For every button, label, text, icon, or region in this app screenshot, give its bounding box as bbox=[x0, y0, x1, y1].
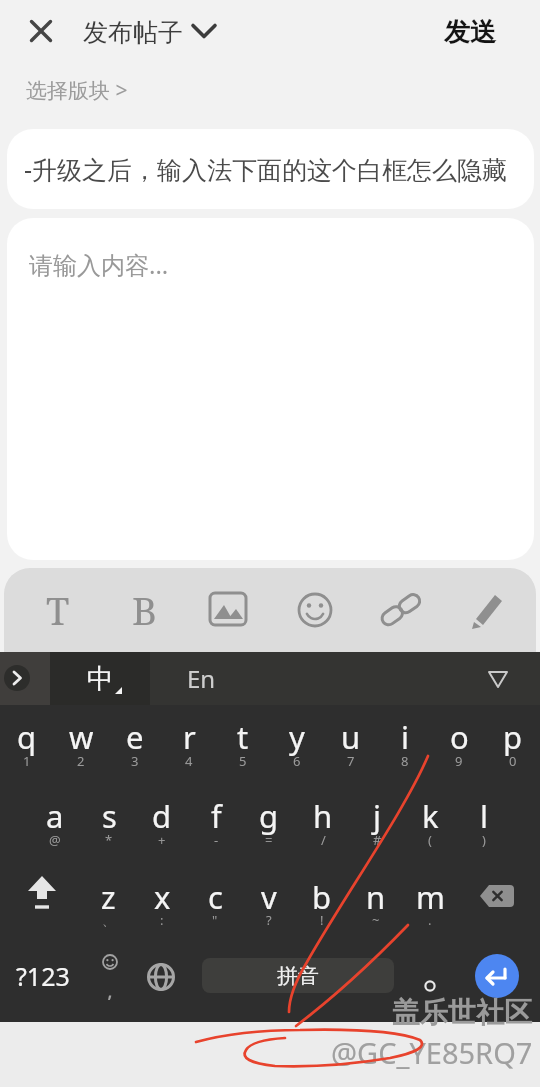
button[interactable]: ?123 bbox=[10, 956, 76, 996]
button[interactable] bbox=[200, 586, 256, 634]
button[interactable]: h bbox=[296, 793, 350, 839]
button[interactable]: 发布帖子 bbox=[80, 12, 220, 52]
staticText: s bbox=[102, 795, 117, 837]
staticText: d bbox=[152, 795, 172, 837]
staticText: 2 bbox=[77, 752, 85, 770]
staticText: 中 bbox=[87, 662, 114, 696]
staticText: @GC_YE85RQ7 bbox=[331, 1033, 533, 1072]
staticText: h bbox=[313, 795, 333, 837]
button[interactable]: s bbox=[82, 793, 136, 839]
staticText: * bbox=[105, 831, 113, 849]
staticText: q bbox=[17, 716, 37, 758]
button[interactable]: t bbox=[216, 714, 270, 760]
staticText: w bbox=[69, 716, 94, 758]
button[interactable]: l bbox=[457, 793, 511, 839]
staticText: = bbox=[265, 831, 273, 849]
button[interactable]: a bbox=[28, 793, 82, 839]
button[interactable] bbox=[475, 954, 519, 998]
button[interactable]: 拼音 bbox=[202, 958, 394, 993]
staticText: @ bbox=[49, 831, 61, 849]
staticText: 发布帖子 bbox=[83, 17, 183, 48]
staticText: : bbox=[160, 911, 164, 929]
button[interactable] bbox=[18, 872, 66, 916]
staticText: x bbox=[154, 876, 171, 918]
staticText: 1 bbox=[23, 752, 31, 770]
staticText: " bbox=[212, 911, 218, 929]
button[interactable]: 发送 bbox=[432, 12, 507, 52]
button[interactable]: i bbox=[378, 714, 432, 760]
staticText: k bbox=[422, 795, 439, 837]
staticText: b bbox=[312, 876, 332, 918]
staticText: j bbox=[373, 795, 381, 837]
staticText: i bbox=[401, 716, 409, 758]
button[interactable]: q bbox=[0, 714, 54, 760]
staticText: v bbox=[261, 876, 277, 918]
button[interactable]: g bbox=[242, 793, 296, 839]
staticText: 、 bbox=[102, 912, 115, 928]
button[interactable]: -升级之后，输入法下面的这个白框怎么隐藏 bbox=[7, 129, 534, 209]
staticText: 4 bbox=[185, 752, 193, 770]
button[interactable] bbox=[0, 652, 50, 705]
button[interactable]: j bbox=[350, 793, 404, 839]
staticText: 5 bbox=[239, 752, 247, 770]
button[interactable] bbox=[18, 9, 64, 55]
staticText: -升级之后，输入法下面的这个白框怎么隐藏 bbox=[24, 152, 508, 186]
staticText: ?123 bbox=[16, 959, 70, 993]
button[interactable]: z bbox=[81, 874, 135, 920]
button[interactable]: T bbox=[14, 582, 102, 638]
staticText: 请输入内容... bbox=[29, 248, 169, 281]
button[interactable]: , bbox=[88, 948, 132, 1004]
staticText: e bbox=[126, 716, 144, 758]
button[interactable]: r bbox=[162, 714, 216, 760]
button[interactable]: e bbox=[108, 714, 162, 760]
staticText: 3 bbox=[131, 752, 139, 770]
staticText: f bbox=[211, 795, 222, 837]
button[interactable]: 请输入内容... bbox=[7, 218, 534, 560]
button[interactable]: n bbox=[349, 874, 403, 920]
button[interactable]: y bbox=[270, 714, 324, 760]
staticText: 7 bbox=[347, 752, 355, 770]
staticText: o bbox=[450, 716, 469, 758]
button[interactable]: 选择版块 > bbox=[26, 76, 156, 110]
staticText: m bbox=[416, 876, 445, 918]
staticText: ! bbox=[320, 911, 324, 929]
staticText: ~ bbox=[372, 911, 380, 929]
button[interactable]: k bbox=[403, 793, 457, 839]
staticText: + bbox=[158, 831, 166, 849]
staticText: ) bbox=[482, 831, 486, 849]
button[interactable] bbox=[140, 956, 182, 998]
staticText: / bbox=[321, 831, 326, 849]
button[interactable]: B bbox=[100, 582, 188, 638]
button[interactable] bbox=[472, 876, 522, 916]
button[interactable]: En bbox=[166, 652, 236, 705]
staticText: 拼音 bbox=[277, 963, 319, 989]
button[interactable]: f bbox=[189, 793, 243, 839]
button[interactable]: d bbox=[135, 793, 189, 839]
button[interactable] bbox=[459, 586, 515, 634]
staticText: u bbox=[341, 716, 361, 758]
button[interactable]: w bbox=[54, 714, 108, 760]
staticText: En bbox=[187, 662, 216, 695]
staticText: 发送 bbox=[444, 16, 496, 49]
staticText: p bbox=[503, 716, 523, 758]
button[interactable] bbox=[373, 586, 429, 634]
staticText: r bbox=[183, 716, 196, 758]
button[interactable]: x bbox=[135, 874, 189, 920]
button[interactable]: v bbox=[242, 874, 296, 920]
button[interactable]: m bbox=[403, 874, 457, 920]
button[interactable]: c bbox=[188, 874, 242, 920]
button[interactable] bbox=[482, 664, 514, 694]
button[interactable] bbox=[287, 586, 343, 634]
staticText: g bbox=[259, 795, 279, 837]
button[interactable]: 中 bbox=[50, 652, 150, 705]
button[interactable]: o bbox=[432, 714, 486, 760]
button[interactable] bbox=[412, 966, 448, 1002]
staticText: y bbox=[289, 716, 305, 758]
staticText: . bbox=[428, 911, 432, 929]
staticText: n bbox=[366, 876, 386, 918]
button[interactable]: b bbox=[295, 874, 349, 920]
staticText: , bbox=[107, 974, 113, 1000]
button[interactable]: p bbox=[486, 714, 540, 760]
staticText: B bbox=[132, 584, 157, 636]
button[interactable]: u bbox=[324, 714, 378, 760]
